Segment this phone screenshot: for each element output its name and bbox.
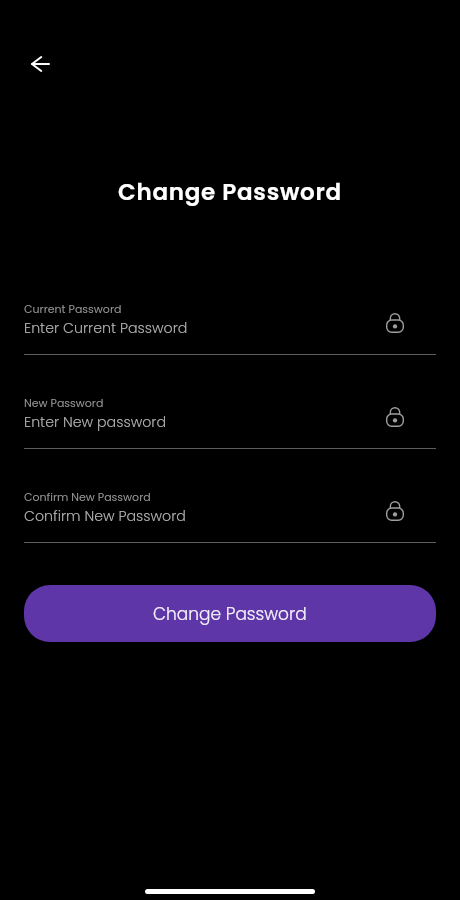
button[interactable]: Change Password [24,585,436,642]
button[interactable]: Show password [378,494,412,528]
staticText: Enter Current Password [24,318,188,338]
staticText: Change Password [153,602,307,626]
button[interactable]: Back [31,46,67,82]
staticText: New Password [24,395,104,410]
button[interactable]: Show password [378,306,412,340]
staticText: Change Password [0,176,460,208]
button[interactable]: Show password [378,400,412,434]
staticText: Enter New password [24,412,167,432]
staticText: Current Password [24,301,122,316]
staticText: Confirm New Password [24,506,186,526]
staticText: Confirm New Password [24,489,151,504]
